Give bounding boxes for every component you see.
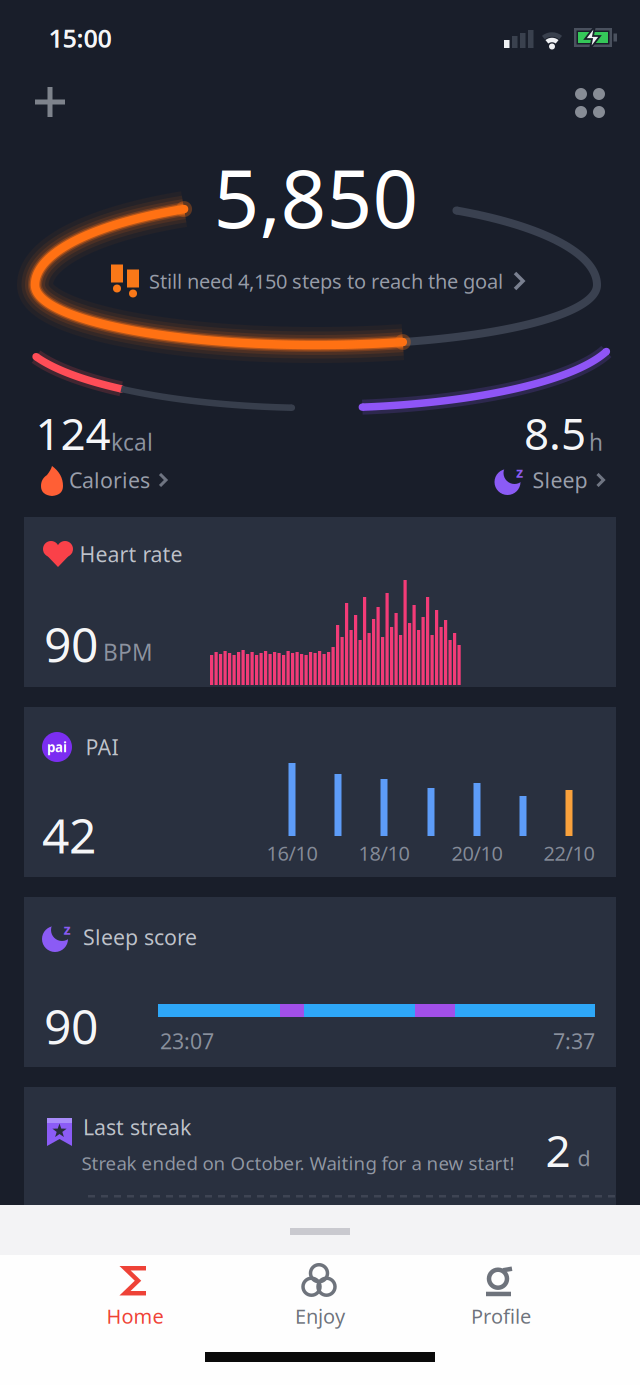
staticText: kcal [111, 427, 153, 457]
staticText: Enjoy [295, 1303, 345, 1329]
staticText: PAI [85, 733, 118, 761]
staticText: 2 [545, 1121, 570, 1179]
staticText: 124 [35, 404, 110, 462]
staticText: 20/10 [451, 840, 502, 866]
staticText: 42 [42, 803, 96, 867]
staticText: d [577, 1144, 590, 1172]
staticText: Last streak [83, 1113, 191, 1141]
staticText: 15:00 [48, 21, 111, 55]
button[interactable]: Home [70, 1261, 200, 1333]
staticText: 16/10 [266, 840, 317, 866]
staticText: 18/10 [358, 840, 409, 866]
staticText: 22/10 [543, 840, 594, 866]
button[interactable]: Last streak [24, 1087, 616, 1257]
staticText: z [516, 462, 523, 482]
staticText: Sleep score [83, 923, 197, 951]
button[interactable]: pai [24, 707, 616, 877]
staticText: Streak ended on October. Waiting for a n… [81, 1151, 514, 1175]
staticText: Home [106, 1303, 163, 1329]
button[interactable]: z [24, 897, 616, 1067]
button[interactable]: Profile [436, 1261, 566, 1333]
staticText: Still need 4,150 steps to reach the goal [149, 268, 503, 294]
staticText: h [589, 427, 603, 457]
button[interactable]: Calories [40, 466, 168, 494]
staticText: BPM [103, 637, 153, 667]
staticText: pai [47, 738, 67, 756]
staticText: 90 [44, 612, 98, 676]
staticText: 90 [44, 994, 98, 1058]
staticText: 23:07 [160, 1027, 214, 1055]
button[interactable]: Still need 4,150 steps to reach the goal [111, 264, 525, 297]
staticText: Sleep [532, 466, 587, 494]
button[interactable]: z [494, 465, 605, 495]
staticText: 7:37 [553, 1027, 595, 1055]
button[interactable]: Heart rate [24, 517, 616, 687]
button[interactable]: Enjoy [255, 1261, 385, 1333]
staticText: Profile [471, 1303, 531, 1329]
staticText: z [63, 919, 70, 939]
staticText: Heart rate [79, 540, 182, 568]
staticText: 8.5 [524, 404, 586, 462]
button[interactable] [29, 81, 71, 123]
button[interactable] [569, 82, 611, 124]
staticText: Calories [69, 466, 150, 494]
staticText: 5,850 [213, 144, 418, 250]
